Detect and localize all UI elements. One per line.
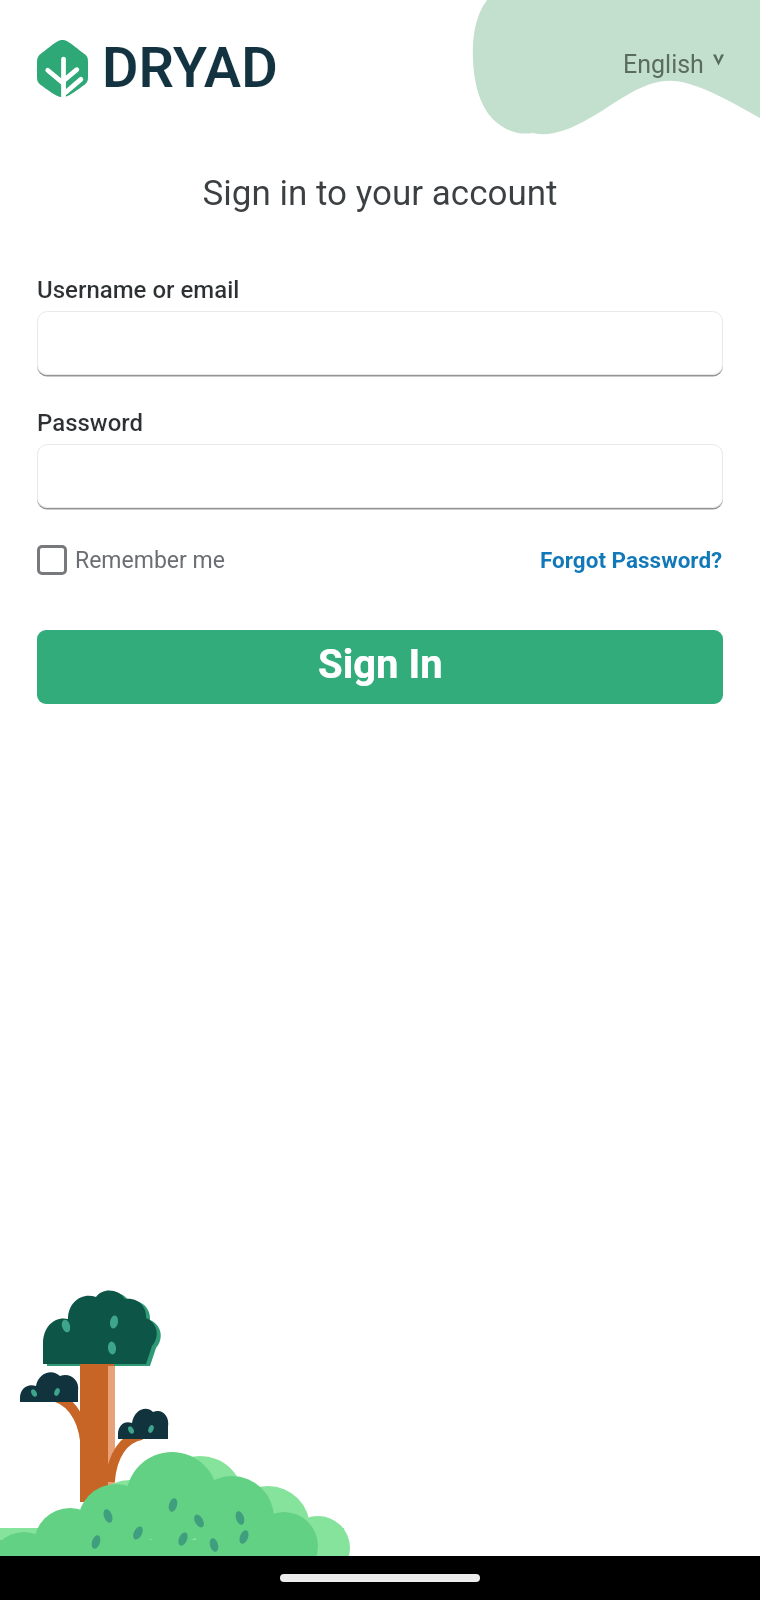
button[interactable]: Forgot Password? [540, 547, 723, 573]
button[interactable]: English [611, 39, 736, 89]
button[interactable] [37, 311, 723, 375]
staticText: Username or email [37, 276, 240, 304]
button[interactable]: Remember me [37, 545, 225, 575]
staticText: Password [37, 409, 144, 437]
staticText: Remember me [75, 547, 225, 574]
button[interactable] [37, 444, 723, 508]
staticText: English [623, 50, 704, 79]
staticText: DRYAD [102, 35, 278, 101]
staticText: Sign In [318, 641, 443, 688]
staticText: Sign in to your account [0, 173, 760, 214]
other: Change language [713, 49, 724, 79]
button[interactable]: Sign In [37, 630, 723, 704]
